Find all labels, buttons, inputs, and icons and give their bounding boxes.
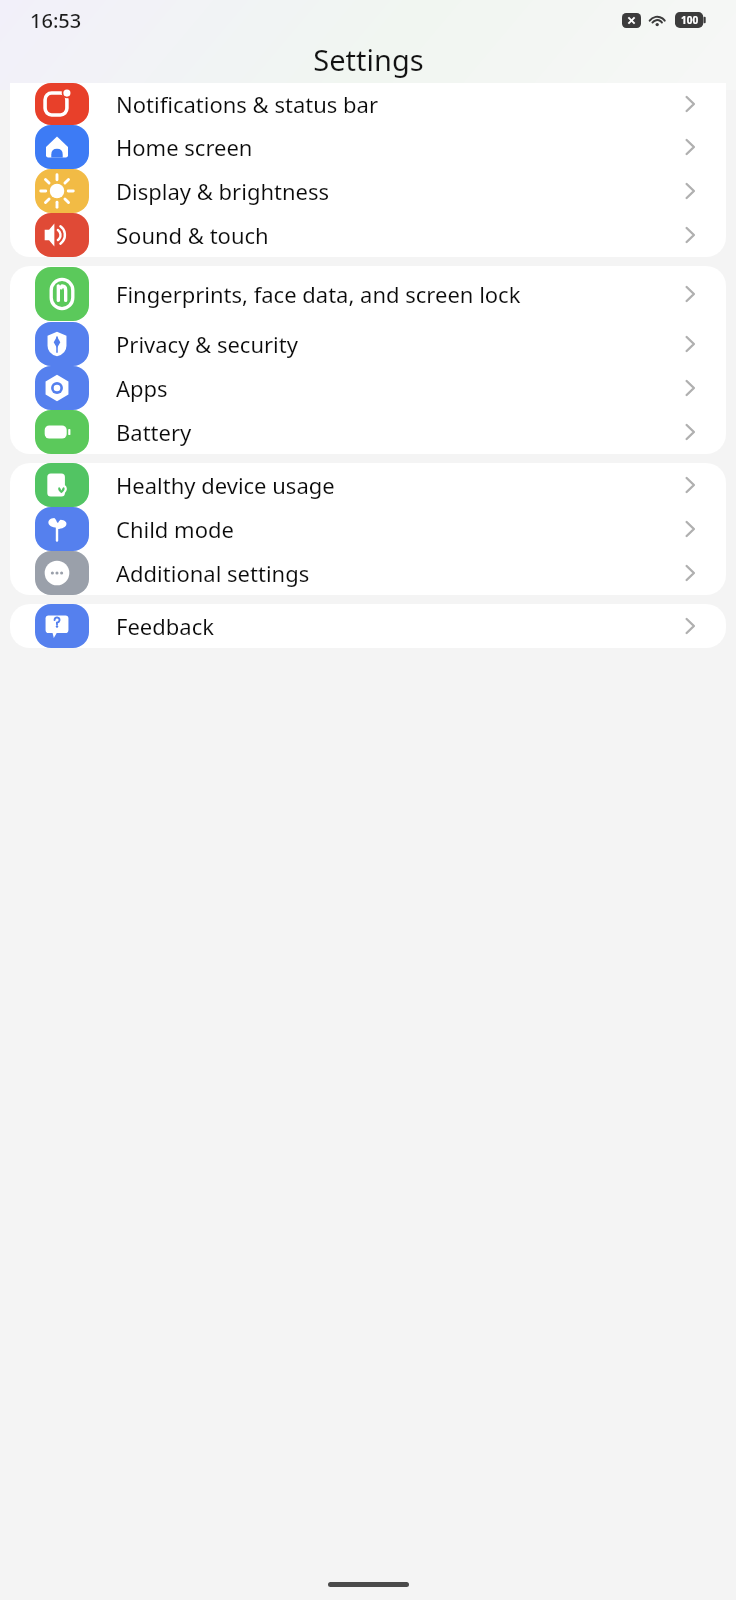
staticText: 100 bbox=[681, 13, 699, 27]
staticText: Healthy device usage bbox=[116, 470, 664, 500]
button[interactable]: Notifications & status bar bbox=[10, 83, 726, 125]
button[interactable]: Battery bbox=[10, 410, 726, 454]
staticText: 16:53 bbox=[30, 7, 82, 34]
staticText: Child mode bbox=[116, 514, 664, 544]
button[interactable]: Apps bbox=[10, 366, 726, 410]
staticText: Apps bbox=[116, 373, 664, 403]
button[interactable]: Fingerprints, face data, and screen lock bbox=[10, 266, 726, 322]
staticText: Settings bbox=[313, 40, 424, 78]
staticText: Battery bbox=[116, 417, 664, 447]
staticText: Additional settings bbox=[116, 558, 664, 588]
button[interactable]: Privacy & security bbox=[10, 322, 726, 366]
button[interactable]: Feedback bbox=[10, 604, 726, 648]
staticText: Privacy & security bbox=[116, 329, 664, 359]
staticText: Home screen bbox=[116, 132, 664, 162]
button[interactable]: Child mode bbox=[10, 507, 726, 551]
staticText: Notifications & status bar bbox=[116, 89, 664, 119]
staticText: Fingerprints, face data, and screen lock bbox=[116, 279, 664, 309]
button[interactable]: Healthy device usage bbox=[10, 463, 726, 507]
button[interactable]: Home screen bbox=[10, 125, 726, 169]
staticText: Display & brightness bbox=[116, 176, 664, 206]
staticText: Sound & touch bbox=[116, 220, 664, 250]
button[interactable]: Additional settings bbox=[10, 551, 726, 595]
button[interactable]: Sound & touch bbox=[10, 213, 726, 257]
button[interactable]: Display & brightness bbox=[10, 169, 726, 213]
staticText: Feedback bbox=[116, 611, 664, 641]
